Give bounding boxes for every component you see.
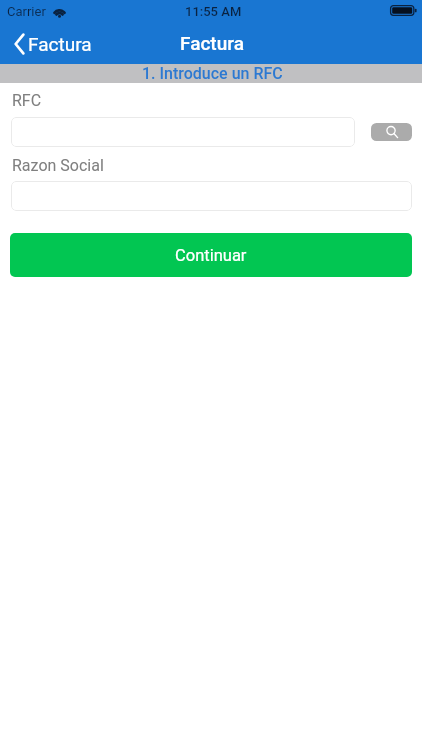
button[interactable]: Factura (0, 29, 102, 59)
button[interactable] (11, 117, 355, 147)
staticText: Continuar (175, 246, 247, 265)
button[interactable] (11, 181, 412, 211)
staticText: Razon Social (12, 156, 104, 175)
button[interactable]: Continuar (10, 233, 412, 277)
staticText: 11:55 AM (185, 4, 242, 19)
staticText: 1. Introduce un RFC (142, 64, 283, 83)
staticText: Factura (180, 32, 244, 54)
staticText: RFC (12, 91, 42, 110)
button[interactable]: Buscar (371, 123, 412, 141)
staticText: Carrier (7, 4, 46, 19)
staticText: Factura (28, 33, 92, 55)
